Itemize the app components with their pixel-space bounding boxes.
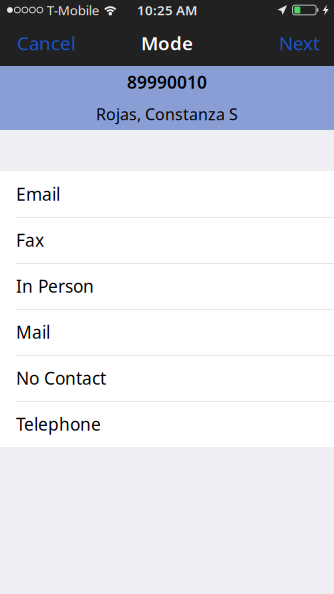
staticText: In Person xyxy=(16,274,94,297)
staticText: Rojas, Constanza S xyxy=(96,103,238,125)
staticText: No Contact xyxy=(16,366,106,389)
button[interactable]: Email xyxy=(0,171,334,217)
staticText: T-Mobile xyxy=(47,1,100,19)
staticText: Email xyxy=(16,182,60,205)
staticText: Cancel xyxy=(17,31,76,55)
staticText: Telephone xyxy=(16,412,101,435)
button[interactable]: In Person xyxy=(0,263,334,309)
staticText: Next xyxy=(279,31,320,55)
staticText: Fax xyxy=(16,228,44,251)
staticText: 10:25 AM xyxy=(137,1,197,19)
button[interactable]: No Contact xyxy=(0,355,334,401)
staticText: Mail xyxy=(16,320,50,343)
button[interactable]: Cancel xyxy=(0,20,90,66)
staticText: Mode xyxy=(141,31,193,55)
button[interactable]: Fax xyxy=(0,217,334,263)
button[interactable]: Next xyxy=(265,20,334,66)
button[interactable]: Telephone xyxy=(0,401,334,447)
staticText: 89990010 xyxy=(127,70,207,93)
button[interactable]: Mail xyxy=(0,309,334,355)
